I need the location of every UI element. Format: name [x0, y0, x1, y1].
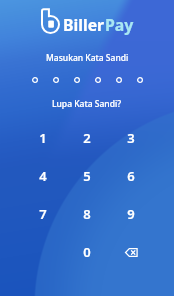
button[interactable]: 9 [109, 195, 153, 233]
staticText: 4 [39, 167, 47, 185]
staticText: 5 [83, 167, 91, 185]
staticText: Masukan Kata Sandi [46, 52, 129, 64]
staticText: 9 [127, 205, 135, 223]
staticText: Lupa Kata Sandi? [52, 98, 122, 110]
staticText: 8 [83, 205, 91, 223]
button[interactable]: 6 [109, 157, 153, 195]
staticText: 3 [127, 129, 135, 147]
button[interactable]: 7 [21, 195, 65, 233]
button[interactable]: 0 [65, 233, 109, 271]
staticText: Pay [105, 14, 134, 36]
staticText: 7 [39, 205, 47, 223]
button[interactable]: Lupa Kata Sandi? [46, 96, 128, 112]
button[interactable]: 1 [21, 119, 65, 157]
staticText: 6 [127, 167, 135, 185]
button[interactable]: 2 [65, 119, 109, 157]
staticText: 0 [83, 243, 91, 261]
other: Backspace [125, 248, 138, 257]
button[interactable]: Backspace [109, 233, 153, 271]
button[interactable]: 4 [21, 157, 65, 195]
button[interactable]: 5 [65, 157, 109, 195]
staticText: Biller [63, 14, 105, 36]
staticText: 2 [83, 129, 91, 147]
button[interactable]: 8 [65, 195, 109, 233]
button [21, 233, 65, 271]
button[interactable]: 3 [109, 119, 153, 157]
staticText: 1 [39, 129, 47, 147]
